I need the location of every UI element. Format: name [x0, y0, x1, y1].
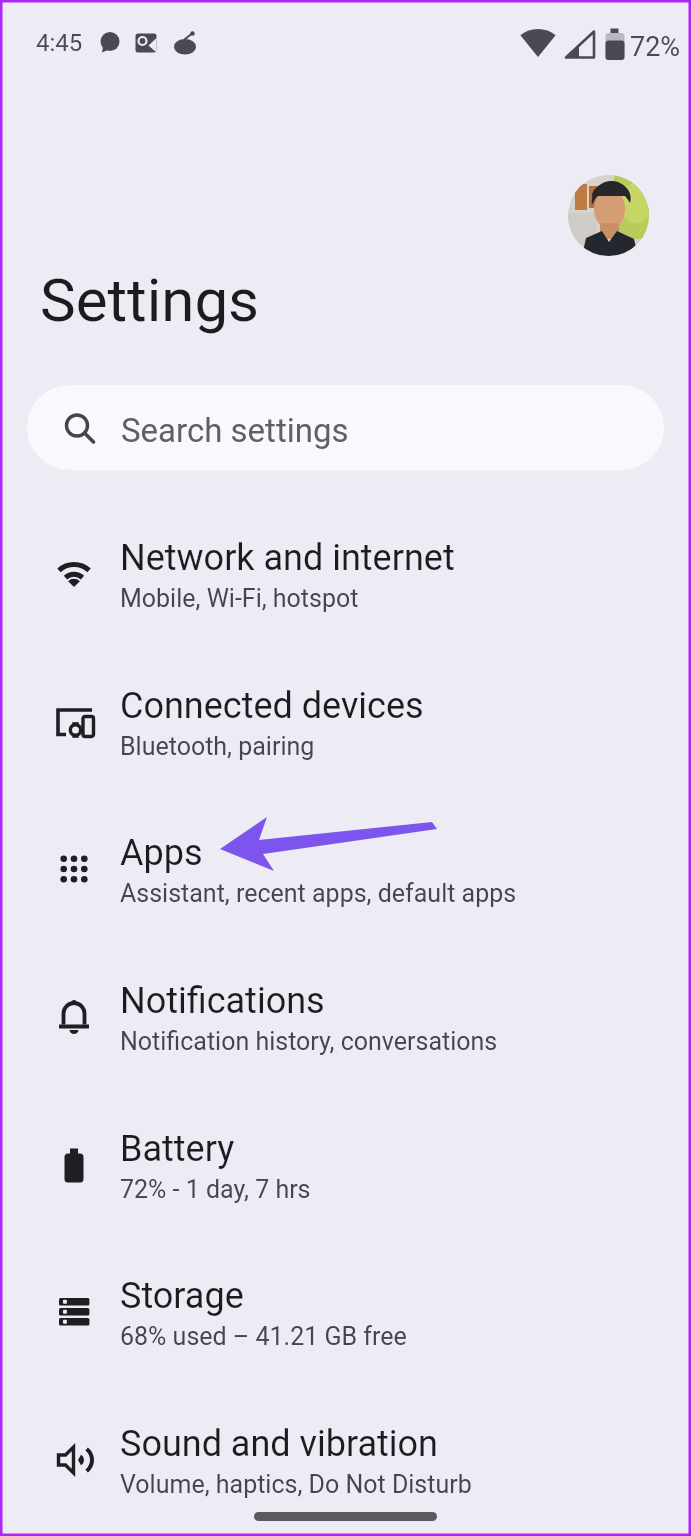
button[interactable]: Battery — [0, 1091, 691, 1239]
staticText: Volume, haptics, Do Not Disturb — [120, 1470, 472, 1499]
staticText: Network and internet — [120, 537, 455, 579]
staticText: Mobile, Wi-Fi, hotspot — [120, 584, 359, 613]
staticText: Bluetooth, pairing — [120, 732, 315, 761]
staticText: Apps — [120, 832, 203, 874]
staticText: 72% - 1 day, 7 hrs — [120, 1175, 311, 1204]
button[interactable]: Network and internet — [0, 500, 691, 648]
staticText: Storage — [120, 1275, 244, 1317]
staticText: Connected devices — [120, 685, 424, 727]
button[interactable]: Storage — [0, 1238, 691, 1386]
staticText: Assistant, recent apps, default apps — [120, 879, 517, 908]
button[interactable]: Notifications — [0, 943, 691, 1091]
staticText: Sound and vibration — [120, 1423, 438, 1465]
staticText: Battery — [120, 1128, 235, 1170]
button[interactable] — [568, 175, 649, 256]
staticText: Settings — [40, 265, 260, 335]
button[interactable] — [254, 1512, 437, 1521]
staticText: 4:45 — [36, 29, 83, 57]
staticText: 68% used – 41.21 GB free — [120, 1322, 407, 1351]
staticText: 72% — [630, 31, 681, 63]
button[interactable]: Sound and vibration — [0, 1386, 691, 1534]
staticText: Notifications — [120, 980, 325, 1022]
button[interactable]: Apps — [0, 795, 691, 943]
staticText: Notification history, conversations — [120, 1027, 498, 1056]
button[interactable]: Connected devices — [0, 648, 691, 796]
button[interactable]: Search settings — [27, 385, 664, 470]
staticText: Search settings — [121, 411, 349, 450]
